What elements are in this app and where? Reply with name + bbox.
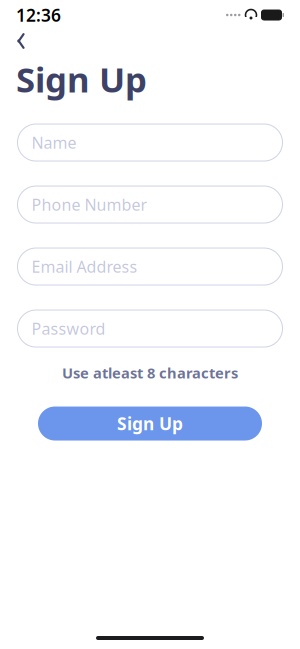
button[interactable]: Name: [17, 124, 282, 161]
staticText: Phone Number: [31, 194, 147, 215]
button[interactable]: Sign Up: [38, 406, 262, 440]
staticText: 12:36: [16, 3, 61, 26]
button[interactable]: Back: [8, 30, 34, 52]
staticText: Sign Up: [16, 56, 147, 102]
staticText: Sign Up: [117, 412, 183, 435]
button[interactable]: Password: [17, 310, 282, 347]
button[interactable]: Email Address: [17, 248, 282, 285]
staticText: Name: [31, 132, 76, 153]
staticText: Email Address: [31, 256, 137, 277]
button[interactable]: Phone Number: [17, 186, 282, 223]
staticText: Use atleast 8 characters: [62, 363, 238, 382]
staticText: Password: [31, 318, 105, 339]
